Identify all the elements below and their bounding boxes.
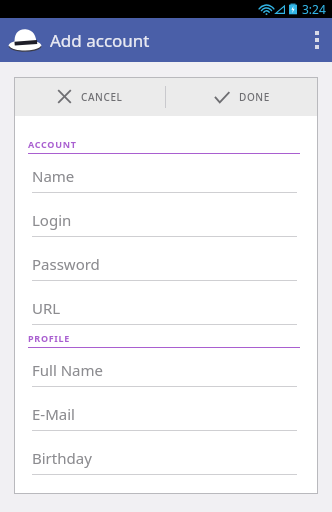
- staticText: Full Name: [32, 360, 103, 380]
- button[interactable]: Password: [14, 242, 318, 286]
- button[interactable]: E-Mail: [14, 392, 318, 436]
- staticText: URL: [32, 298, 61, 318]
- staticText: Password: [32, 254, 100, 274]
- button[interactable]: CANCEL: [14, 77, 165, 116]
- staticText: Name: [32, 166, 75, 186]
- button[interactable]: Full Name: [14, 348, 318, 392]
- button[interactable]: Birthday: [14, 436, 318, 480]
- button[interactable]: Name: [14, 154, 318, 198]
- button[interactable]: Login: [14, 198, 318, 242]
- button[interactable]: DONE: [166, 77, 318, 116]
- staticText: DONE: [239, 90, 270, 104]
- staticText: PROFILE: [28, 332, 71, 344]
- staticText: Add account: [50, 29, 150, 52]
- button[interactable]: URL: [14, 286, 318, 330]
- staticText: Birthday: [32, 448, 92, 468]
- button[interactable]: More options: [302, 18, 332, 62]
- staticText: 3:24: [302, 1, 326, 17]
- staticText: ACCOUNT: [28, 138, 77, 150]
- staticText: Login: [32, 210, 72, 230]
- staticText: E-Mail: [32, 404, 75, 424]
- staticText: CANCEL: [81, 90, 123, 104]
